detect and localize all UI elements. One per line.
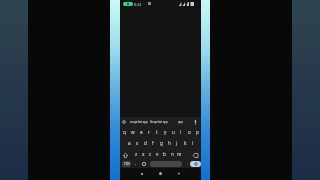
staticText: d <box>144 140 147 146</box>
staticText: n <box>171 151 174 157</box>
button[interactable]: Enter <box>190 161 201 167</box>
button[interactable]: Space <box>150 161 182 167</box>
button[interactable]: f <box>149 138 157 149</box>
staticText: e <box>140 129 143 135</box>
button[interactable]: app <box>178 120 184 124</box>
staticText: app <box>178 120 184 124</box>
staticText: . <box>187 160 189 166</box>
staticText: c <box>149 151 152 157</box>
button[interactable]: Backspace <box>189 150 202 160</box>
staticText: q <box>123 129 126 135</box>
button[interactable]: Snapchat app <box>150 120 168 124</box>
button[interactable]: g <box>157 138 165 149</box>
button[interactable]: i <box>177 127 185 138</box>
button[interactable]: , <box>133 160 139 168</box>
button[interactable]: s <box>133 138 141 149</box>
staticText: p <box>196 129 199 135</box>
staticText: t <box>156 129 158 135</box>
button[interactable]: l <box>189 138 197 149</box>
button[interactable]: t <box>153 127 161 138</box>
staticText: b <box>163 151 166 157</box>
staticText: k <box>184 140 187 146</box>
button[interactable]: o <box>185 127 193 138</box>
staticText: x <box>142 151 145 157</box>
button[interactable]: k <box>181 138 189 149</box>
button[interactable]: Emoji <box>141 160 146 168</box>
button[interactable]: ?123 <box>122 161 131 167</box>
staticText: h <box>168 140 171 146</box>
staticText: s <box>136 140 139 146</box>
button[interactable]: n <box>169 150 176 160</box>
staticText: f <box>152 140 154 146</box>
button[interactable]: snapchat app <box>130 120 148 124</box>
staticText: r <box>148 129 150 135</box>
staticText: l <box>192 140 194 146</box>
button[interactable]: m <box>176 150 183 160</box>
button[interactable]: q <box>120 127 129 138</box>
button[interactable]: y <box>161 127 169 138</box>
button[interactable]: z <box>133 150 140 160</box>
staticText: w <box>131 129 135 135</box>
staticText: m <box>177 151 182 157</box>
staticText: z <box>135 151 138 157</box>
staticText: j <box>176 140 178 146</box>
staticText: , <box>135 160 137 166</box>
button[interactable]: Back <box>174 169 183 178</box>
staticText: y <box>164 129 167 135</box>
button[interactable]: x <box>140 150 147 160</box>
button[interactable]: w <box>129 127 137 138</box>
staticText: o <box>188 129 191 135</box>
button[interactable]: r <box>145 127 153 138</box>
button[interactable]: Home <box>156 169 165 178</box>
button[interactable]: h <box>165 138 173 149</box>
button[interactable]: Shift <box>120 150 133 160</box>
button[interactable]: . <box>185 160 191 168</box>
staticText: u <box>172 129 175 135</box>
button[interactable]: v <box>154 150 161 160</box>
staticText: i <box>180 129 182 135</box>
button[interactable]: e <box>137 127 145 138</box>
button[interactable]: b <box>161 150 168 160</box>
staticText: a <box>128 140 131 146</box>
staticText: Snapchat app <box>150 120 168 124</box>
staticText: v <box>156 151 159 157</box>
button[interactable]: j <box>173 138 181 149</box>
button[interactable]: c <box>147 150 154 160</box>
button[interactable]: Voice input <box>194 120 197 125</box>
staticText: snapchat app <box>130 120 148 124</box>
staticText: ?123 <box>124 162 130 166</box>
button[interactable]: d <box>141 138 149 149</box>
staticText: 8:24 <box>134 2 142 7</box>
button[interactable]: Recent apps <box>137 169 146 178</box>
button[interactable]: a <box>125 138 133 149</box>
button[interactable]: u <box>169 127 177 138</box>
button[interactable]: p <box>193 127 201 138</box>
button[interactable]: Keyboard settings <box>122 120 126 124</box>
staticText: g <box>160 140 163 146</box>
